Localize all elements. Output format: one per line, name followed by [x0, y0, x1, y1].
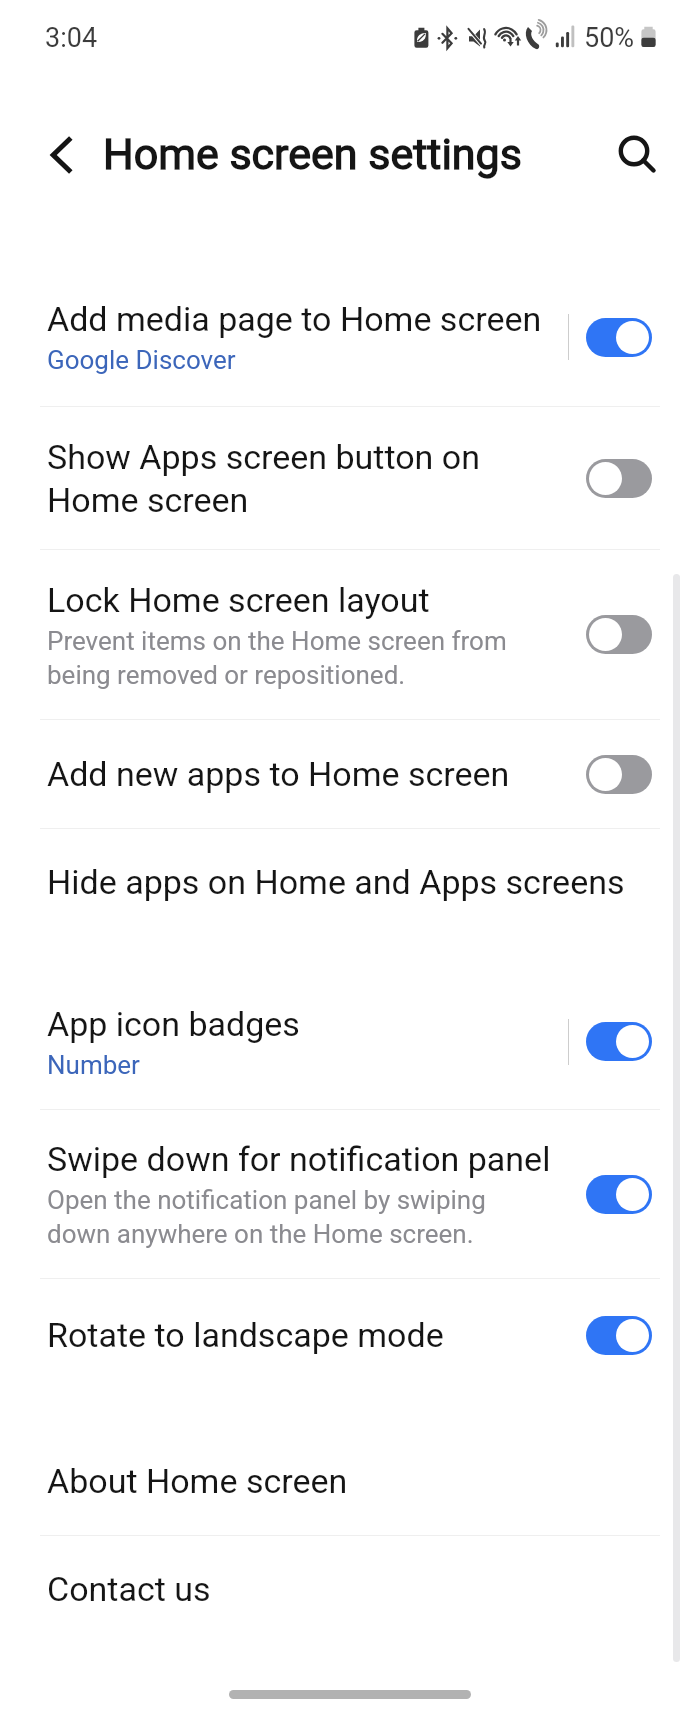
button[interactable]: Swipe down for notification panel	[586, 1175, 652, 1214]
button[interactable]: Lock Home screen layout	[0, 550, 700, 719]
button[interactable]: Show Apps screen button on Home screen	[0, 407, 700, 549]
button[interactable]: App icon badges	[0, 974, 700, 1109]
staticText: Number	[47, 1050, 140, 1080]
staticText: Rotate to landscape mode	[47, 1315, 444, 1355]
button[interactable]: Hide apps on Home and Apps screens	[0, 829, 700, 934]
staticText: Open the notification panel by swiping d…	[47, 1185, 486, 1249]
staticText: About Home screen	[47, 1461, 348, 1501]
button[interactable]: Add new apps to Home screen	[586, 755, 652, 794]
button[interactable]: Add media page to Home screen	[0, 268, 700, 406]
button[interactable]: Add media page to Home screen	[586, 318, 652, 357]
button[interactable]: About Home screen	[0, 1427, 700, 1535]
button[interactable]: Show Apps screen button on Home screen	[586, 459, 652, 498]
button[interactable]: Contact us	[0, 1536, 700, 1642]
staticText: Show Apps screen button on Home screen	[47, 437, 480, 520]
button[interactable]: Add new apps to Home screen	[0, 720, 700, 828]
staticText: Prevent items on the Home screen from be…	[47, 626, 507, 690]
staticText: 3:04	[45, 22, 98, 54]
button[interactable]: Search	[602, 123, 666, 187]
staticText: Contact us	[47, 1569, 211, 1609]
button[interactable]: Rotate to landscape mode	[586, 1316, 652, 1355]
button[interactable]: Swipe down for notification panel	[0, 1110, 700, 1278]
button[interactable]: Navigate back	[28, 123, 92, 187]
staticText: Google Discover	[47, 345, 236, 375]
staticText: App icon badges	[47, 1004, 300, 1044]
staticText: Add media page to Home screen	[47, 299, 542, 339]
staticText: Swipe down for notification panel	[47, 1139, 551, 1179]
staticText: 50%	[584, 22, 635, 54]
button[interactable]: Lock Home screen layout	[586, 615, 652, 654]
button[interactable]: App icon badges	[586, 1022, 652, 1061]
staticText: Hide apps on Home and Apps screens	[47, 862, 625, 902]
staticText: Lock Home screen layout	[47, 580, 430, 620]
staticText: Home screen settings	[103, 129, 522, 179]
button[interactable]: Rotate to landscape mode	[0, 1279, 700, 1391]
staticText: Add new apps to Home screen	[47, 754, 510, 794]
